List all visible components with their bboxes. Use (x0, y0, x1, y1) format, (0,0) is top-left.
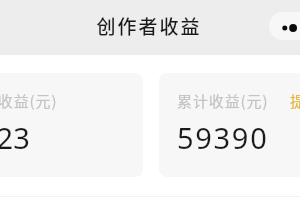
button[interactable]: 累计收益(元) (159, 73, 300, 177)
staticText: 累计收益(元) (177, 90, 269, 112)
staticText: 昨日收益(元) (0, 90, 58, 112)
staticText: 创作者收益 (96, 12, 202, 40)
staticText: 6823 (0, 118, 31, 157)
button[interactable]: More options (269, 12, 300, 40)
button[interactable]: 昨日收益(元) (0, 73, 143, 177)
staticText: 提现 (290, 90, 300, 112)
staticText: 59390 (177, 118, 269, 157)
